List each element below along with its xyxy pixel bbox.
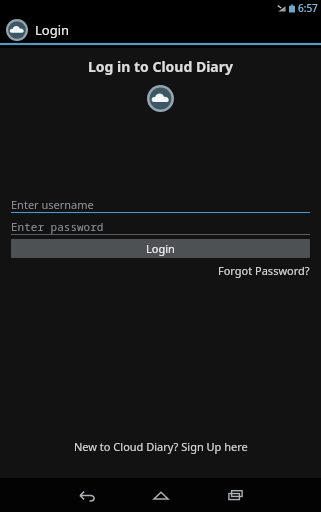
staticText: Login (35, 21, 70, 39)
button[interactable]: New to Cloud Diary? Sign Up here (74, 439, 248, 454)
staticText: Enter username (11, 197, 94, 212)
button[interactable]: Recent apps (198, 478, 272, 512)
button[interactable]: Enter password (11, 218, 310, 235)
staticText: Enter password (11, 219, 104, 234)
button[interactable]: Login (11, 239, 310, 258)
button[interactable]: Enter username (11, 196, 310, 213)
button[interactable]: Home (124, 478, 198, 512)
staticText: Login (146, 241, 175, 256)
button[interactable]: Forgot Password? (218, 263, 310, 278)
staticText: 6:57 (298, 1, 318, 15)
staticText: Log in to Cloud Diary (0, 57, 321, 76)
button[interactable]: Back (50, 478, 124, 512)
